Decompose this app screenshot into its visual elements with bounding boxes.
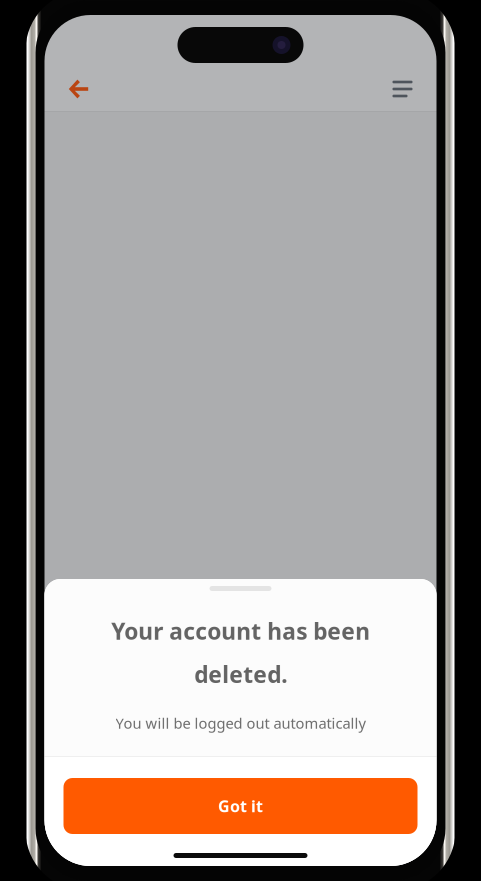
- button[interactable]: Got it: [63, 778, 417, 834]
- button[interactable]: Menu: [380, 67, 424, 111]
- staticText: You will be logged out automatically: [115, 713, 365, 733]
- button[interactable]: Back: [56, 67, 100, 111]
- staticText: Got it: [218, 795, 263, 817]
- staticText: Your account has been deleted.: [111, 616, 370, 689]
